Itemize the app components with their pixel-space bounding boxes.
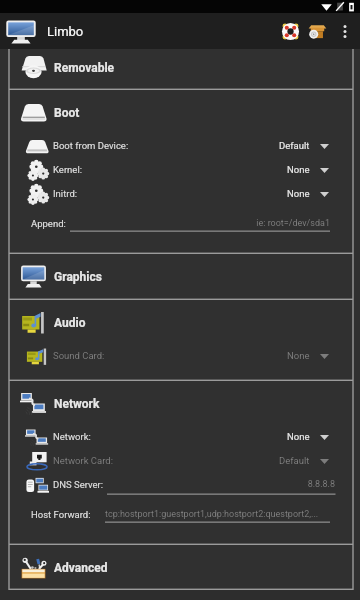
staticText: 8.8.8.8 bbox=[107, 479, 335, 490]
staticText: None bbox=[287, 164, 310, 175]
staticText: Network: bbox=[53, 431, 91, 442]
button[interactable]: Audio bbox=[0, 300, 360, 344]
button[interactable]: Boot bbox=[0, 90, 360, 134]
button[interactable]: Boot from Device: bbox=[0, 134, 360, 158]
staticText: DNS Server: bbox=[53, 479, 104, 490]
staticText: Host Forward: bbox=[31, 509, 91, 520]
button[interactable]: Sound Card: bbox=[0, 344, 360, 368]
button[interactable]: Initrd: bbox=[0, 182, 360, 206]
button[interactable]: Limbo home bbox=[5, 19, 37, 45]
staticText: None bbox=[287, 350, 310, 361]
button[interactable]: DNS Server: bbox=[0, 473, 360, 497]
staticText: Default bbox=[279, 455, 310, 466]
button[interactable]: Host Forward: bbox=[0, 497, 360, 545]
button[interactable]: More options bbox=[336, 18, 354, 44]
staticText: Audio bbox=[54, 316, 86, 330]
button[interactable]: Storage bbox=[307, 23, 328, 41]
staticText: None bbox=[287, 188, 310, 199]
button[interactable]: Help bbox=[281, 22, 300, 41]
staticText: None bbox=[287, 431, 310, 442]
staticText: Initrd: bbox=[53, 188, 78, 199]
staticText: Sound Card: bbox=[53, 350, 105, 361]
button[interactable]: Kernel: bbox=[0, 158, 360, 182]
staticText: Network bbox=[54, 397, 100, 411]
staticText: Boot bbox=[54, 106, 80, 120]
button[interactable]: Network: bbox=[0, 425, 360, 449]
button[interactable]: Graphics bbox=[0, 254, 360, 298]
staticText: ie: root=/dev/sda1 bbox=[70, 218, 330, 229]
staticText: Kernel: bbox=[53, 164, 82, 175]
staticText: Limbo bbox=[47, 24, 84, 39]
staticText: Removable bbox=[54, 61, 115, 75]
staticText: Append: bbox=[31, 218, 66, 229]
button[interactable]: Network bbox=[0, 381, 360, 425]
button[interactable]: Removable bbox=[0, 49, 360, 90]
staticText: Network Card: bbox=[53, 455, 114, 466]
button[interactable]: Append: bbox=[0, 206, 360, 254]
staticText: Advanced bbox=[54, 561, 108, 575]
button[interactable]: Network Card: bbox=[0, 449, 360, 473]
button[interactable]: Advanced bbox=[0, 545, 360, 589]
staticText: Default bbox=[279, 140, 310, 151]
staticText: Graphics bbox=[54, 270, 102, 284]
staticText: Boot from Device: bbox=[53, 140, 129, 151]
staticText: tcp:hostport1:guestport1,udp:hostport2:q… bbox=[105, 509, 330, 520]
